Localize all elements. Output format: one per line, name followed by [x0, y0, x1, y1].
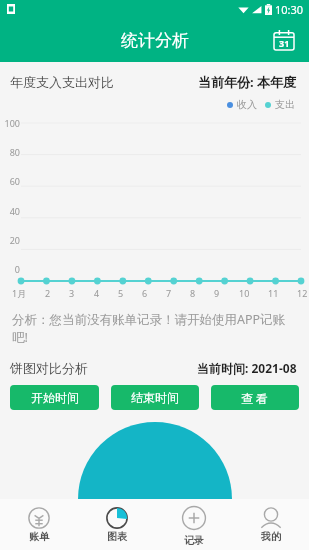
staticText: 饼图对比分析 — [10, 360, 88, 376]
staticText: 0 — [2, 263, 20, 275]
staticText: 100 — [2, 117, 20, 129]
staticText: 40 — [2, 205, 20, 217]
staticText: 分析：您当前没有账单记录！请开始使用APP记账吧! — [12, 311, 295, 346]
staticText: 2 — [45, 287, 51, 299]
button[interactable]: 结束时间 — [111, 385, 199, 410]
staticText: 6 — [142, 287, 148, 299]
button[interactable]: 记录 — [155, 499, 232, 550]
button[interactable]: 查 看 — [211, 385, 299, 410]
button[interactable]: 图表 — [78, 499, 155, 550]
staticText: 图表 — [107, 530, 127, 543]
staticText: 10 — [239, 287, 250, 299]
staticText: 9 — [214, 287, 220, 299]
staticText: 查 看 — [241, 390, 269, 406]
staticText: 年度支入支出对比 — [10, 74, 114, 90]
staticText: 支出 — [275, 98, 295, 111]
staticText: 5 — [118, 287, 124, 299]
button[interactable]: 我的 — [232, 499, 309, 550]
staticText: 7 — [166, 287, 172, 299]
staticText: 记录 — [184, 534, 204, 547]
staticText: 3 — [69, 287, 75, 299]
button[interactable]: 开始时间 — [10, 385, 99, 410]
staticText: 20 — [2, 234, 20, 246]
staticText: 开始时间 — [31, 390, 79, 405]
staticText: 收入 — [237, 98, 257, 111]
button[interactable]: 账单 — [0, 499, 78, 550]
staticText: 8 — [190, 287, 196, 299]
staticText: 结束时间 — [131, 390, 179, 405]
staticText: 11 — [268, 287, 279, 299]
staticText: 10:30 — [275, 2, 304, 17]
staticText: 我的 — [261, 530, 281, 543]
staticText: 当前年份: 本年度 — [198, 73, 297, 91]
staticText: 4 — [94, 287, 100, 299]
staticText: 12 — [297, 287, 308, 299]
staticText: 31 — [279, 37, 290, 49]
staticText: 统计分析 — [121, 30, 189, 51]
staticText: 80 — [2, 146, 20, 158]
staticText: 1月 — [12, 287, 27, 299]
button[interactable]: Calendar — [270, 26, 298, 54]
staticText: 账单 — [29, 530, 49, 543]
staticText: 当前时间: 2021-08 — [197, 360, 297, 376]
staticText: 60 — [2, 175, 20, 187]
